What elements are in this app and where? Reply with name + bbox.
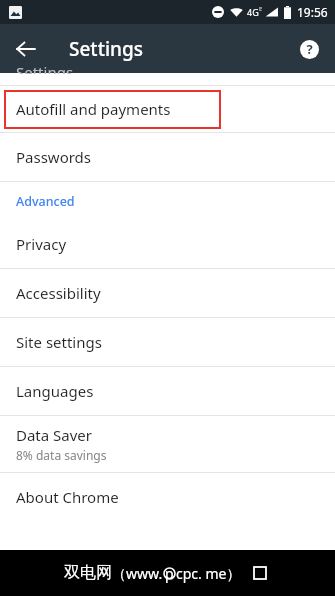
staticText: 4G [247, 6, 259, 18]
button[interactable]: Settings [0, 73, 335, 85]
button[interactable]: Languages [0, 367, 335, 415]
staticText: Advanced [16, 193, 75, 210]
button[interactable]: Passwords [0, 133, 335, 181]
button[interactable]: Help and feedback [289, 29, 329, 69]
staticText: 双电网 [64, 563, 112, 583]
button[interactable]: Site settings [0, 318, 335, 366]
staticText: p [165, 564, 174, 583]
staticText: Settings [69, 36, 143, 62]
button[interactable]: Recent apps [249, 562, 271, 584]
staticText: Passwords [16, 147, 92, 167]
staticText: Data Saver [16, 425, 93, 445]
button[interactable]: Accessibility [0, 269, 335, 317]
button[interactable]: Data Saver [0, 416, 335, 472]
button[interactable]: About Chrome [0, 473, 335, 521]
staticText: cpc. me） [176, 564, 241, 583]
button[interactable]: Autofill and payments [0, 86, 335, 132]
staticText: ? [306, 40, 313, 58]
staticText: Accessibility [16, 283, 101, 303]
staticText: Languages [16, 381, 94, 401]
staticText: About Chrome [16, 487, 119, 507]
button[interactable]: Privacy [0, 220, 335, 268]
staticText: E [259, 5, 263, 13]
staticText: （www. [112, 564, 163, 583]
staticText: 8% data savings [16, 447, 107, 463]
staticText: Settings [16, 62, 74, 74]
staticText: Site settings [16, 332, 102, 352]
staticText: Autofill and payments [16, 99, 171, 119]
staticText: Privacy [16, 234, 67, 254]
staticText: 19:56 [297, 4, 328, 20]
button[interactable]: Back [6, 29, 46, 69]
